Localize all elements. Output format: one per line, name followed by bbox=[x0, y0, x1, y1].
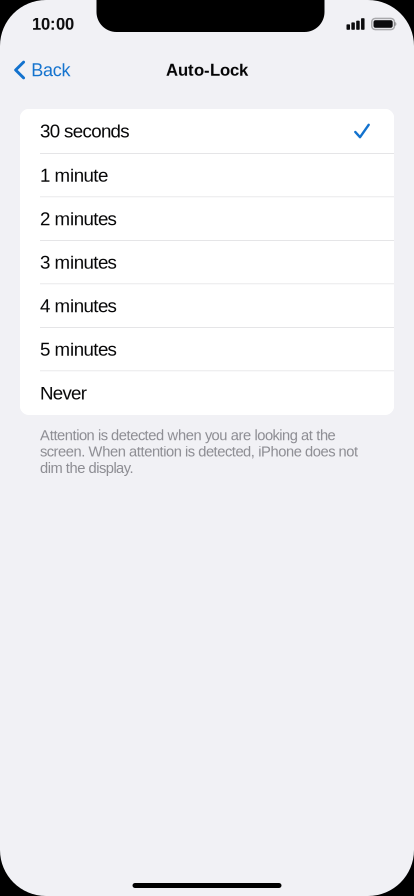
button[interactable]: 3 minutes bbox=[20, 241, 394, 284]
staticText: Never bbox=[40, 383, 87, 404]
button[interactable]: 4 minutes bbox=[20, 284, 394, 328]
staticText: 1 minute bbox=[40, 165, 108, 186]
button[interactable]: Back bbox=[0, 48, 83, 92]
button[interactable]: Never bbox=[20, 371, 394, 415]
staticText: 4 minutes bbox=[40, 295, 117, 316]
button[interactable]: 5 minutes bbox=[20, 328, 394, 371]
staticText: Auto-Lock bbox=[166, 61, 248, 79]
staticText: 3 minutes bbox=[40, 252, 117, 273]
staticText: 10:00 bbox=[32, 15, 74, 33]
button[interactable]: 1 minute bbox=[20, 154, 394, 197]
staticText: Back bbox=[31, 60, 71, 80]
button[interactable]: 2 minutes bbox=[20, 197, 394, 241]
staticText: 2 minutes bbox=[40, 208, 117, 229]
staticText: 5 minutes bbox=[40, 339, 117, 360]
button[interactable]: 30 seconds bbox=[20, 109, 394, 154]
staticText: 30 seconds bbox=[40, 121, 129, 141]
staticText: Attention is detected when you are looki… bbox=[40, 427, 358, 476]
